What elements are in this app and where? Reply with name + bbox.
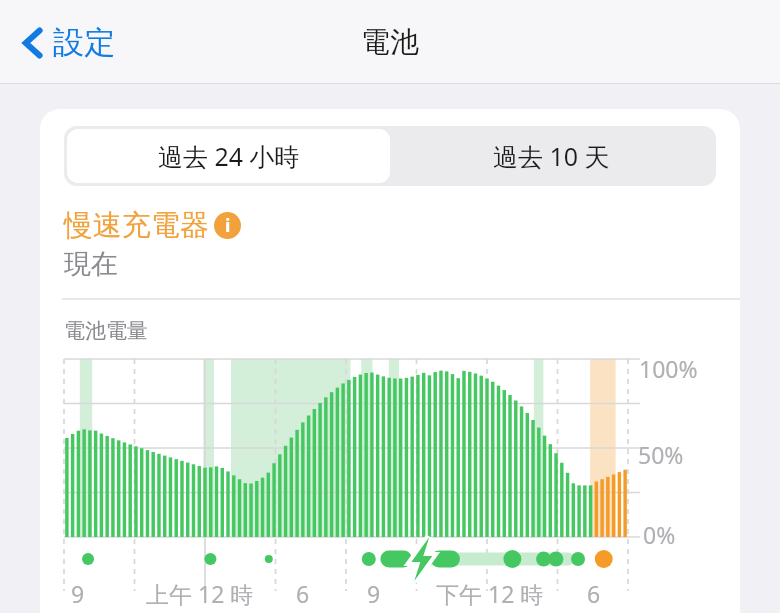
button[interactable]: 過去 24 小時: [67, 129, 390, 183]
button[interactable]: 關於慢速充電器: [214, 212, 241, 239]
staticText: 過去 24 小時: [158, 139, 300, 173]
staticText: 電池電量: [64, 318, 148, 344]
staticText: 100%: [639, 353, 698, 384]
staticText: 慢速充電器: [64, 207, 209, 244]
button[interactable]: 設定: [14, 15, 123, 70]
staticText: 6: [587, 578, 601, 609]
staticText: 6: [296, 578, 310, 609]
staticText: 9: [367, 578, 381, 609]
staticText: 設定: [53, 23, 115, 62]
button[interactable]: 過去 10 天: [390, 129, 713, 183]
staticText: 電池: [361, 24, 419, 61]
staticText: 0%: [643, 519, 676, 550]
staticText: i: [225, 213, 231, 238]
staticText: 上午 12 時: [146, 578, 254, 609]
staticText: 9: [71, 578, 85, 609]
staticText: 過去 10 天: [493, 139, 610, 173]
staticText: 下午 12 時: [436, 578, 544, 609]
staticText: 現在: [64, 247, 118, 281]
staticText: 50%: [638, 439, 684, 470]
